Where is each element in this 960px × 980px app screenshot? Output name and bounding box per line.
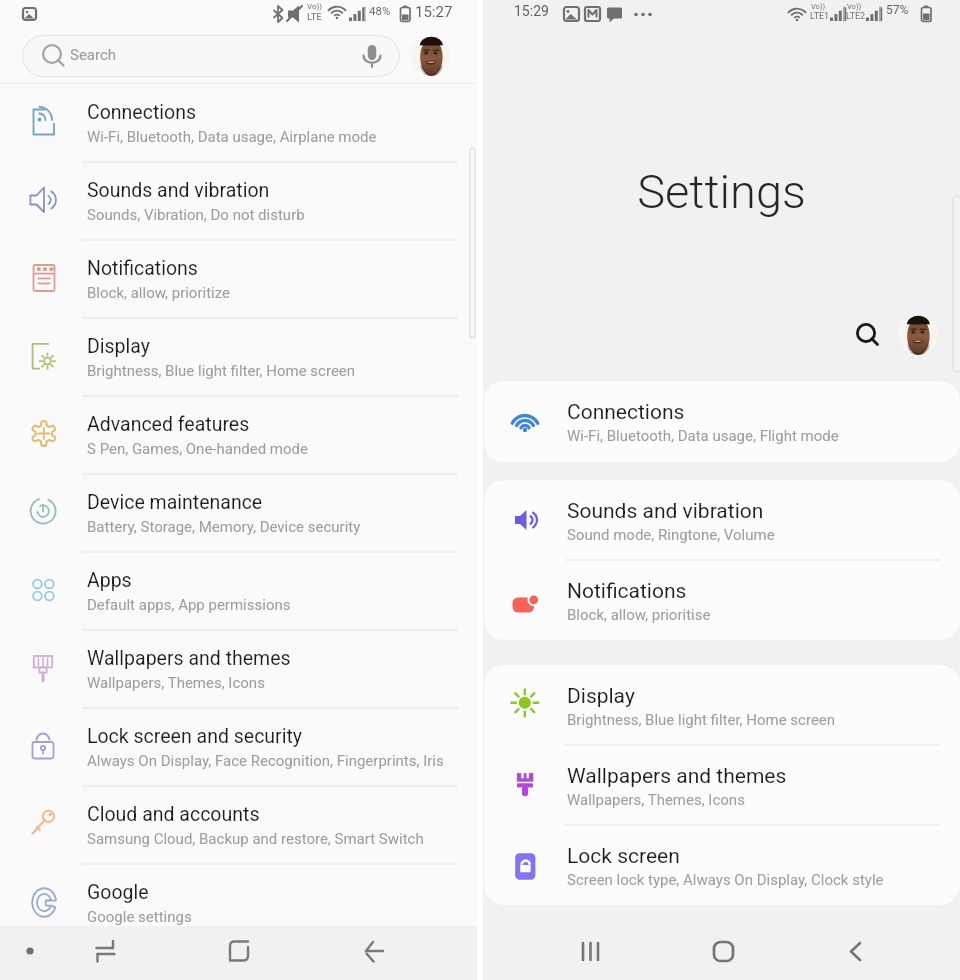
- staticText: Cloud and accounts: [87, 803, 260, 826]
- button[interactable]: Wallpapers and themes: [0, 630, 477, 708]
- staticText: Default apps, App permissions: [87, 596, 291, 614]
- staticText: Battery, Storage, Memory, Device securit…: [87, 518, 361, 536]
- button[interactable]: Cloud and accounts: [0, 786, 477, 864]
- button[interactable]: Wallpapers and themes: [484, 745, 960, 825]
- staticText: S Pen, Games, One-handed mode: [87, 440, 308, 458]
- button[interactable]: Recents: [70, 926, 142, 980]
- staticText: Notifications: [87, 257, 198, 280]
- staticText: LTE: [307, 11, 322, 22]
- staticText: Screen lock type, Always On Display, Clo…: [567, 871, 884, 889]
- button[interactable]: Search: [22, 35, 400, 77]
- button[interactable]: Notifications: [0, 240, 477, 318]
- staticText: Sounds and vibration: [567, 499, 764, 524]
- staticText: Google settings: [87, 908, 192, 926]
- button[interactable]: Account: [898, 315, 938, 355]
- staticText: Lock screen and security: [87, 725, 303, 748]
- staticText: Block, allow, prioritise: [567, 606, 711, 624]
- staticText: Vo)): [811, 2, 826, 11]
- button[interactable]: Display: [484, 665, 960, 745]
- staticText: 15:29: [514, 3, 549, 19]
- staticText: Wallpapers and themes: [567, 764, 787, 789]
- staticText: Lock screen: [567, 844, 680, 869]
- staticText: Block, allow, prioritize: [87, 284, 230, 302]
- staticText: Brightness, Blue light filter, Home scre…: [567, 711, 836, 729]
- button[interactable]: Apps: [0, 552, 477, 630]
- staticText: Sounds and vibration: [87, 179, 270, 202]
- button[interactable]: Lock screen: [484, 825, 960, 905]
- staticText: Vo)): [847, 2, 862, 11]
- staticText: LTE1: [810, 11, 830, 22]
- button[interactable]: Search: [848, 315, 888, 355]
- button[interactable]: Display: [0, 318, 477, 396]
- staticText: Wi-Fi, Bluetooth, Data usage, Airplane m…: [87, 128, 377, 146]
- staticText: 15:27: [415, 3, 453, 21]
- staticText: Settings: [483, 164, 960, 219]
- staticText: Notifications: [567, 579, 687, 604]
- staticText: Vo)): [307, 2, 323, 11]
- staticText: Wallpapers, Themes, Icons: [567, 791, 745, 809]
- button[interactable]: Notifications: [484, 560, 960, 640]
- staticText: LTE2: [846, 11, 866, 22]
- staticText: Samsung Cloud, Backup and restore, Smart…: [87, 830, 424, 848]
- button[interactable]: Advanced features: [0, 396, 477, 474]
- button[interactable]: Sounds and vibration: [0, 162, 477, 240]
- staticText: Wallpapers, Themes, Icons: [87, 674, 265, 692]
- staticText: Device maintenance: [87, 491, 263, 514]
- staticText: Sounds, Vibration, Do not disturb: [87, 206, 305, 224]
- staticText: Wi-Fi, Bluetooth, Data usage, Flight mod…: [567, 427, 839, 445]
- staticText: Wallpapers and themes: [87, 647, 291, 670]
- staticText: 48%: [369, 4, 391, 17]
- button[interactable]: Sounds and vibration: [484, 480, 960, 560]
- staticText: Always On Display, Face Recognition, Fin…: [87, 752, 444, 770]
- staticText: Apps: [87, 569, 132, 592]
- staticText: Sound mode, Ringtone, Volume: [567, 526, 775, 544]
- staticText: Brightness, Blue light filter, Home scre…: [87, 362, 356, 380]
- staticText: Search: [70, 46, 117, 64]
- staticText: 57%: [886, 3, 909, 17]
- button[interactable]: Google: [0, 864, 477, 942]
- button[interactable]: Home: [203, 926, 275, 980]
- button[interactable]: Home: [687, 924, 759, 980]
- button[interactable]: Device maintenance: [0, 474, 477, 552]
- button[interactable]: Back: [337, 926, 409, 980]
- button[interactable]: Recents: [553, 924, 625, 980]
- button[interactable]: Connections: [484, 381, 960, 462]
- button[interactable]: Account: [411, 36, 451, 76]
- staticText: Google: [87, 881, 149, 904]
- button[interactable]: Lock screen and security: [0, 708, 477, 786]
- staticText: Display: [87, 335, 150, 358]
- staticText: Connections: [567, 400, 685, 425]
- button[interactable]: Connections: [0, 84, 477, 162]
- staticText: Connections: [87, 101, 196, 124]
- button[interactable]: Notification dot: [10, 926, 50, 980]
- staticText: Display: [567, 684, 635, 709]
- button[interactable]: Back: [815, 924, 887, 980]
- staticText: Advanced features: [87, 413, 250, 436]
